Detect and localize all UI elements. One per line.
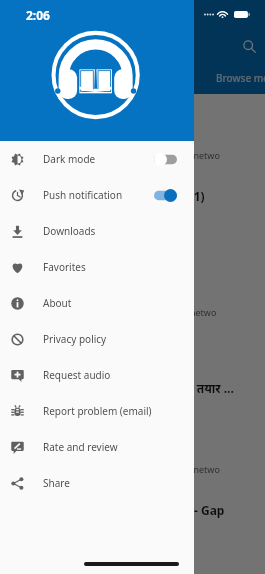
staticText: Fire Bridges - Gap [120,502,225,518]
staticText: Drama · English · netwo [120,463,220,475]
staticText: Rate and review [43,440,118,454]
button[interactable]: Rate and review [0,429,194,465]
button[interactable]: Podcast · Hindi · netwo [0,262,265,402]
staticText: Downloads [43,224,96,238]
button[interactable]: Share [0,465,194,501]
button[interactable]: Drama · English · netwo [0,106,265,246]
staticText: Request audio [43,368,111,382]
staticText: Push notification [43,188,123,202]
staticText: Favorites [43,260,86,274]
staticText: Share [43,476,70,490]
staticText: About [43,296,72,310]
staticText: Sapiens (2011) [120,188,205,204]
button[interactable]: Push notification [0,177,194,213]
button[interactable]: About [0,285,194,321]
staticText: Privacy policy [43,332,107,346]
button[interactable]: Privacy policy [0,321,194,357]
staticText: Report problem (email) [43,404,152,418]
staticText: 2:06 [26,7,50,23]
button[interactable]: Library [103,71,137,85]
button[interactable]: Downloads [0,213,194,249]
staticText: Podcast · Hindi · netwo [120,306,217,318]
staticText: Dark mode [43,152,96,166]
button[interactable]: Request audio [0,357,194,393]
button[interactable]: Dark mode [0,141,194,177]
staticText: मुंबई किलोमीटर तयार ... [120,380,234,396]
button[interactable]: Report problem (email) [0,393,194,429]
button[interactable]: Search [237,34,262,59]
button[interactable]: Favorites [0,249,194,285]
staticText: Audio Library [38,39,122,57]
button[interactable]: Browse more [216,71,265,85]
staticText: Drama · English · netwo [120,149,220,161]
button[interactable]: Drama · English · netwo [0,420,265,560]
